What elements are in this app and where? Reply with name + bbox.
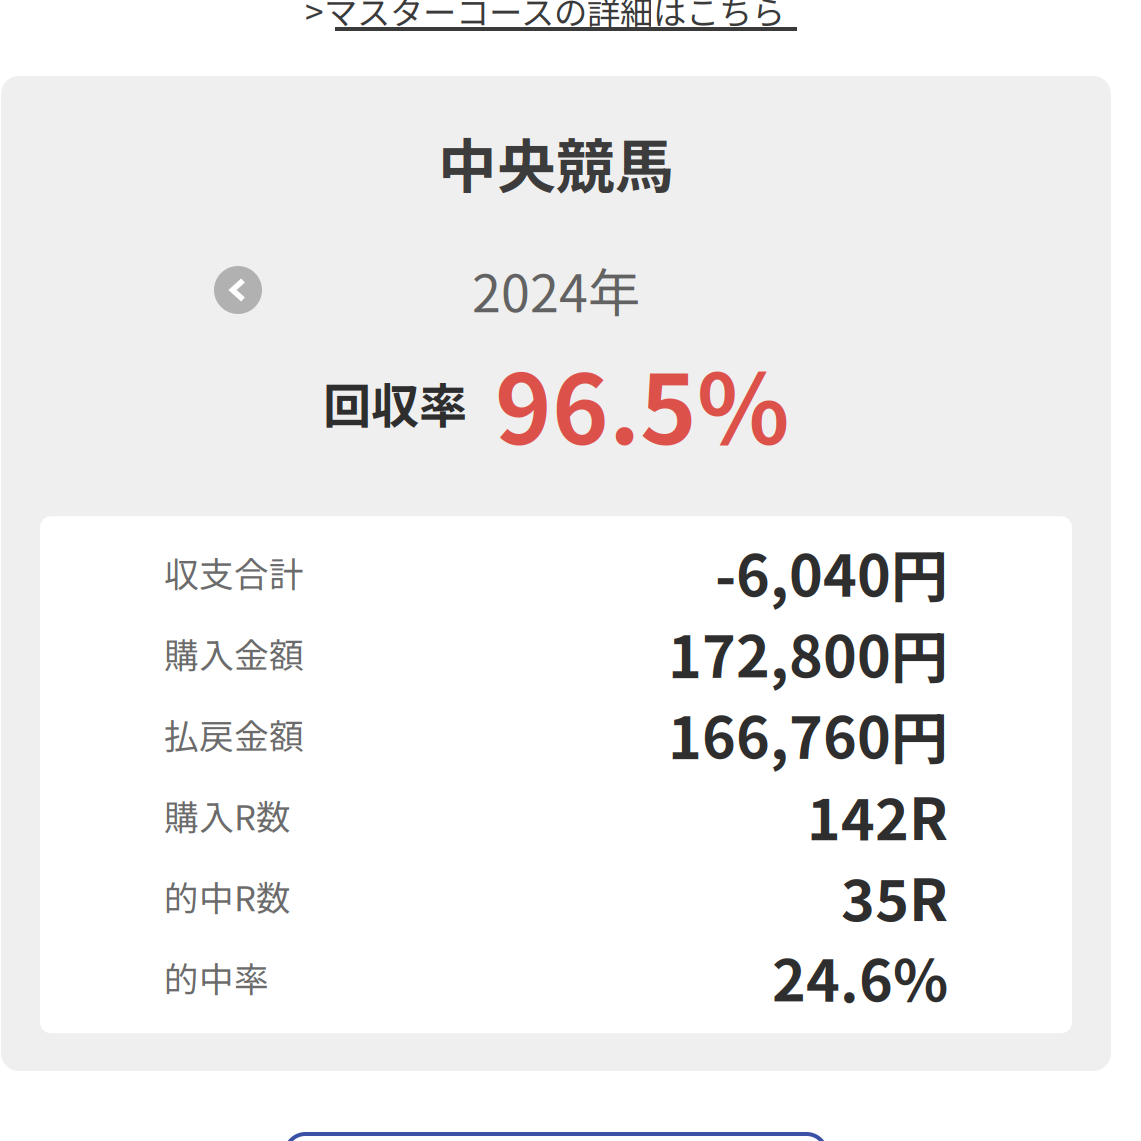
- staticText: -6,040円: [715, 531, 948, 614]
- staticText: 2024年: [472, 252, 640, 327]
- staticText: 中央競馬: [438, 120, 674, 205]
- staticText: 172,800円: [668, 612, 948, 695]
- staticText: 的中率: [164, 952, 269, 1002]
- staticText: 購入R数: [164, 790, 291, 840]
- button[interactable]: Open: [285, 1134, 826, 1141]
- staticText: 166,760円: [668, 693, 948, 776]
- staticText: 収支合計: [164, 547, 304, 597]
- staticText: 回収率: [323, 368, 467, 437]
- button[interactable]: >マスターコースの詳細はこちら: [305, 0, 807, 31]
- staticText: 96.5%: [495, 333, 789, 472]
- staticText: 払戻金額: [164, 709, 304, 759]
- staticText: 的中R数: [164, 871, 291, 921]
- staticText: 購入金額: [164, 628, 304, 678]
- staticText: >マスターコースの詳細はこちら: [305, 0, 785, 34]
- staticText: 142R: [807, 774, 948, 857]
- button[interactable]: Previous year: [214, 266, 262, 314]
- staticText: 24.6%: [772, 936, 948, 1019]
- staticText: 35R: [841, 855, 948, 938]
